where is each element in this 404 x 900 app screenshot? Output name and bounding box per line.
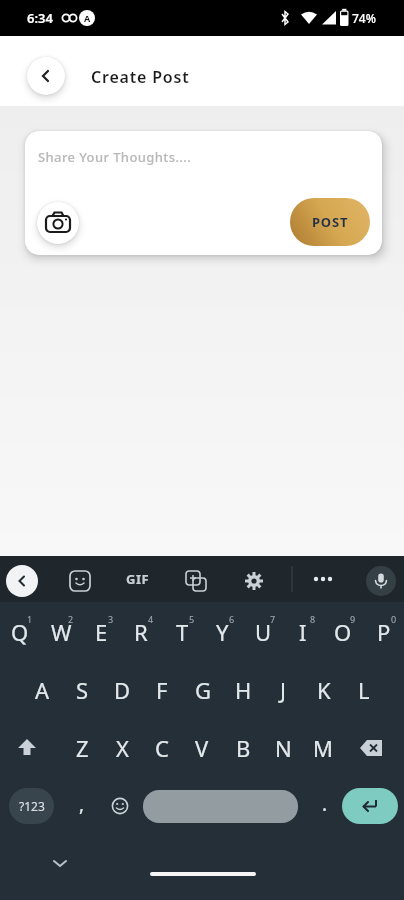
staticText: ?123	[19, 798, 45, 814]
staticText: G	[195, 675, 212, 705]
staticText: GIF	[126, 570, 150, 588]
button[interactable]: .	[303, 782, 347, 826]
staticText: 3	[108, 613, 114, 625]
button[interactable]	[111, 797, 129, 815]
button[interactable]	[313, 574, 333, 584]
staticText: R	[134, 617, 148, 647]
button[interactable]: H	[221, 668, 265, 712]
button[interactable]	[185, 570, 207, 592]
staticText: K	[317, 675, 331, 705]
staticText: S	[76, 675, 89, 705]
staticText: J	[280, 675, 287, 705]
staticText: A	[84, 12, 91, 24]
button[interactable]	[16, 738, 38, 758]
staticText: L	[358, 675, 370, 705]
staticText: Create Post	[91, 66, 190, 88]
button[interactable]: U	[241, 610, 285, 654]
staticText: 0	[391, 613, 397, 625]
button[interactable]: Z	[60, 726, 104, 770]
staticText: E	[95, 617, 108, 647]
button[interactable]: I	[281, 610, 325, 654]
button[interactable]	[342, 788, 398, 824]
staticText: C	[155, 733, 169, 763]
button[interactable]: P	[362, 610, 404, 654]
button[interactable]: C	[140, 726, 184, 770]
staticText: I	[299, 617, 307, 647]
button[interactable]: L	[342, 668, 386, 712]
staticText: B	[236, 733, 251, 763]
button[interactable]: A	[20, 668, 64, 712]
staticText: 1	[27, 613, 33, 625]
button[interactable]: Q	[0, 610, 42, 654]
button[interactable]	[27, 57, 65, 95]
button[interactable]: POST	[290, 198, 370, 246]
button[interactable]: W	[39, 610, 83, 654]
button[interactable]	[243, 570, 265, 592]
button[interactable]	[52, 859, 68, 869]
button[interactable]: K	[302, 668, 346, 712]
button[interactable]: B	[221, 726, 265, 770]
staticText: ,	[79, 791, 85, 817]
button[interactable]: T	[160, 610, 204, 654]
button[interactable]: GIF	[126, 556, 150, 602]
staticText: X	[116, 733, 129, 763]
button[interactable]: N	[261, 726, 305, 770]
staticText: 74%	[352, 10, 376, 26]
button[interactable]	[6, 565, 38, 597]
staticText: 4	[148, 613, 154, 625]
staticText: H	[235, 675, 252, 705]
staticText: 9	[350, 613, 356, 625]
staticText: 5	[189, 613, 195, 625]
staticText: T	[176, 617, 189, 647]
button[interactable]: X	[100, 726, 144, 770]
staticText: 8	[310, 613, 316, 625]
staticText: 6:34	[27, 9, 53, 27]
staticText: Z	[76, 733, 89, 763]
staticText: F	[156, 675, 168, 705]
staticText: POST	[312, 213, 349, 231]
button[interactable]: M	[301, 726, 345, 770]
staticText: Q	[11, 617, 29, 647]
staticText: U	[255, 617, 272, 647]
staticText: 2	[68, 613, 74, 625]
button[interactable]	[37, 202, 79, 244]
button[interactable]: E	[79, 610, 123, 654]
staticText: V	[195, 733, 209, 763]
button[interactable]: G	[181, 668, 225, 712]
staticText: P	[377, 617, 391, 647]
staticText: 6	[229, 613, 235, 625]
button[interactable]: V	[180, 726, 224, 770]
staticText: O	[334, 617, 352, 647]
button[interactable]	[366, 566, 396, 596]
staticText: M	[313, 733, 333, 763]
button[interactable]	[143, 790, 298, 823]
staticText: D	[114, 675, 131, 705]
button[interactable]: Y	[200, 610, 244, 654]
button[interactable]: F	[140, 668, 184, 712]
button[interactable]: ?123	[9, 788, 54, 824]
button[interactable]	[69, 570, 91, 592]
staticText: Y	[216, 617, 229, 647]
button[interactable]: J	[261, 668, 305, 712]
button[interactable]	[359, 739, 383, 757]
staticText: A	[35, 675, 50, 705]
staticText: .	[322, 791, 328, 817]
button[interactable]: D	[100, 668, 144, 712]
button[interactable]: ,	[60, 782, 104, 826]
staticText: N	[275, 733, 292, 763]
staticText: Share Your Thoughts....	[38, 148, 192, 166]
button[interactable]: S	[60, 668, 104, 712]
staticText: W	[51, 617, 72, 647]
button[interactable]: R	[119, 610, 163, 654]
staticText: 7	[270, 613, 276, 625]
button[interactable]: O	[321, 610, 365, 654]
